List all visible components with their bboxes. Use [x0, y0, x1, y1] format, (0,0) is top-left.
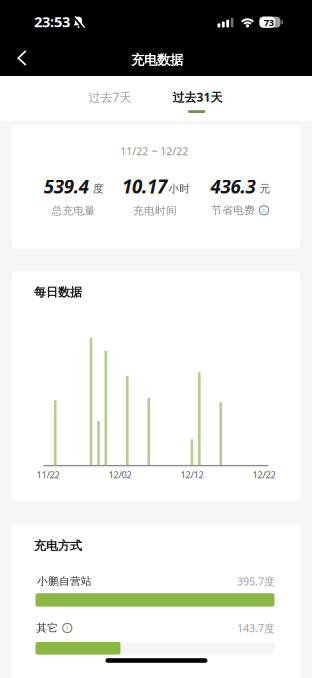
- staticText: 11/22: [36, 468, 59, 481]
- staticText: 436.3: [210, 174, 255, 199]
- staticText: 总充电量: [52, 204, 96, 217]
- staticText: 充电数据: [131, 52, 183, 68]
- staticText: 小时: [168, 182, 190, 195]
- staticText: 过去7天: [88, 89, 131, 105]
- staticText: 节省电费: [211, 204, 255, 217]
- staticText: 73: [264, 16, 274, 28]
- button[interactable]: 过去31天: [159, 81, 235, 113]
- staticText: 元: [259, 182, 270, 195]
- staticText: 每日数据: [34, 285, 82, 300]
- staticText: 12/02: [108, 468, 131, 481]
- staticText: 10.17: [122, 174, 167, 199]
- staticText: 充电时间: [133, 204, 177, 217]
- staticText: 12/22: [252, 468, 275, 481]
- staticText: 12/12: [180, 468, 203, 481]
- button[interactable]: 节省电费: [211, 204, 269, 217]
- staticText: 度: [93, 182, 104, 195]
- staticText: 395.7度: [237, 574, 275, 588]
- staticText: i: [66, 624, 68, 633]
- staticText: 11/22 ~ 12/22: [120, 144, 188, 158]
- staticText: 小鹏自营站: [37, 575, 92, 588]
- staticText: 23:53: [34, 12, 70, 31]
- staticText: 143.7度: [237, 621, 275, 635]
- staticText: 充电方式: [34, 538, 82, 553]
- staticText: 过去31天: [172, 89, 222, 105]
- button[interactable]: [5, 39, 39, 77]
- staticText: i: [263, 206, 265, 215]
- button[interactable]: 其它: [36, 621, 72, 634]
- staticText: 其它: [36, 621, 58, 634]
- staticText: 539.4: [44, 174, 89, 199]
- button[interactable]: 过去7天: [75, 81, 145, 113]
